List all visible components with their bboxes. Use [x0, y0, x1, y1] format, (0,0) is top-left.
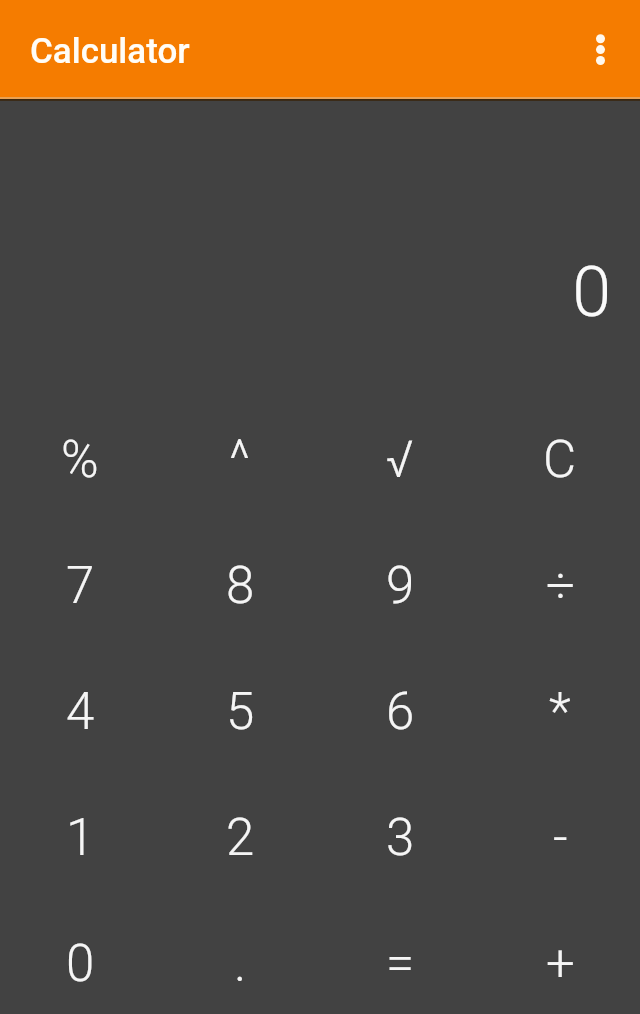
staticText: =	[386, 934, 415, 994]
staticText: *	[549, 682, 571, 742]
staticText: 3	[386, 808, 415, 868]
staticText: 0	[572, 251, 611, 333]
button[interactable]: *	[480, 649, 640, 775]
staticText: 0	[66, 934, 95, 994]
staticText: 4	[66, 682, 95, 742]
button[interactable]: -	[480, 775, 640, 901]
button[interactable]: 4	[0, 649, 160, 775]
staticText: 5	[226, 682, 255, 742]
staticText: +	[546, 934, 575, 994]
staticText: √	[386, 430, 414, 490]
button[interactable]: +	[480, 901, 640, 1014]
staticText: -	[553, 808, 568, 868]
button[interactable]: 1	[0, 775, 160, 901]
button[interactable]: 5	[160, 649, 320, 775]
button[interactable]: .	[160, 901, 320, 1014]
button[interactable]: 6	[320, 649, 480, 775]
button[interactable]: More options	[571, 20, 629, 78]
button[interactable]: ÷	[480, 523, 640, 649]
staticText: 8	[226, 556, 255, 616]
button[interactable]: 0	[0, 901, 160, 1014]
staticText: ^	[229, 430, 251, 490]
staticText: 6	[386, 682, 415, 742]
staticText: C	[543, 430, 577, 490]
staticText: 1	[66, 808, 95, 868]
button[interactable]: 2	[160, 775, 320, 901]
staticText: 9	[386, 556, 415, 616]
button[interactable]: %	[0, 397, 160, 523]
staticText: 2	[226, 808, 255, 868]
button[interactable]: 7	[0, 523, 160, 649]
staticText: ÷	[546, 556, 575, 616]
button[interactable]: C	[480, 397, 640, 523]
button[interactable]: =	[320, 901, 480, 1014]
staticText: Calculator	[30, 31, 190, 72]
button[interactable]: ^	[160, 397, 320, 523]
button[interactable]: √	[320, 397, 480, 523]
button[interactable]: 3	[320, 775, 480, 901]
button[interactable]: 8	[160, 523, 320, 649]
staticText: .	[234, 934, 247, 994]
staticText: %	[61, 430, 99, 490]
staticText: 7	[66, 556, 95, 616]
button[interactable]: 9	[320, 523, 480, 649]
